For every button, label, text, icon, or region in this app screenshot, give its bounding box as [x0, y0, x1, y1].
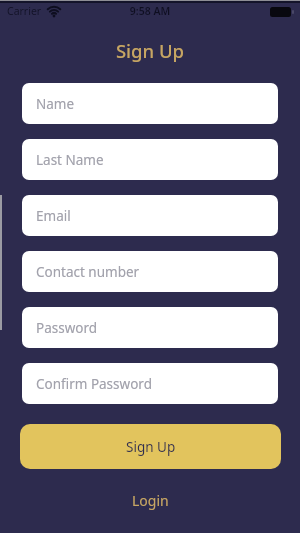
staticText: Password	[36, 319, 98, 337]
staticText: Confirm Password	[36, 375, 152, 393]
staticText: Last Name	[36, 151, 104, 169]
staticText: Sign Up	[126, 438, 176, 456]
button[interactable]: Email	[22, 195, 278, 236]
staticText: Carrier	[7, 4, 42, 18]
button[interactable]: Password	[22, 307, 278, 348]
staticText: Contact number	[36, 263, 140, 281]
staticText: Sign Up	[0, 38, 300, 63]
staticText: 9:58 AM	[0, 4, 300, 18]
staticText: Email	[36, 207, 71, 225]
button[interactable]: Contact number	[22, 251, 278, 292]
staticText: Name	[36, 95, 75, 113]
button[interactable]: Confirm Password	[22, 363, 278, 404]
button[interactable]: Name	[22, 83, 278, 124]
button[interactable]: Sign Up	[20, 424, 281, 469]
button[interactable]: Login	[0, 488, 300, 512]
staticText: Login	[132, 491, 169, 510]
button[interactable]: Last Name	[22, 139, 278, 180]
